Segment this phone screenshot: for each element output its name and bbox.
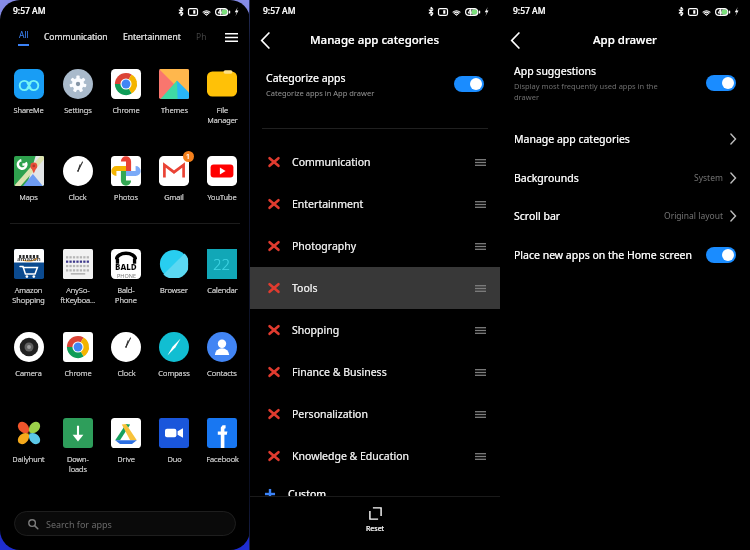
button[interactable]: Back (500, 25, 530, 55)
button[interactable]: Place new apps on the Home screen (514, 242, 736, 268)
staticText: Backgrounds (514, 171, 579, 185)
button[interactable]: Menu (220, 26, 242, 48)
staticText: Browser (160, 285, 188, 295)
staticText: 22 (213, 254, 231, 274)
button[interactable]: Browser (150, 249, 198, 295)
button[interactable]: Contacts (198, 332, 246, 378)
button[interactable]: Settings (53, 69, 102, 115)
staticText: Duo (167, 454, 182, 464)
staticText: Amazon Shopping (12, 285, 45, 305)
button[interactable]: Search for apps (14, 511, 236, 536)
staticText: Tools (292, 281, 318, 295)
staticText: Knowledge & Education (292, 449, 410, 463)
button[interactable]: BALD (102, 249, 150, 305)
button[interactable]: Personalization (268, 393, 486, 435)
button[interactable]: Categorize apps (266, 62, 484, 106)
staticText: PHONE (117, 272, 136, 279)
button[interactable]: All (18, 29, 29, 46)
staticText: Shopping (292, 323, 340, 337)
staticText: Drive (117, 454, 135, 464)
staticText: Chrome (64, 368, 92, 378)
staticText: Themes (161, 105, 188, 115)
staticText: Finance & Business (292, 365, 387, 379)
button[interactable]: Compass (150, 332, 198, 378)
staticText: Compass (158, 368, 190, 378)
button[interactable]: Entertainment (268, 183, 486, 225)
staticText: App suggestions (514, 64, 597, 78)
button[interactable]: Shopping (268, 309, 486, 351)
button[interactable]: Clock (53, 156, 102, 202)
staticText: Photography (292, 239, 357, 253)
button[interactable]: Reset (366, 507, 385, 534)
button[interactable]: Facebook (198, 418, 246, 464)
button[interactable]: Photos (102, 156, 150, 202)
staticText: Camera (15, 368, 42, 378)
staticText: Entertainment (292, 197, 364, 211)
button[interactable]: Finance & Business (268, 351, 486, 393)
button[interactable]: File Manager (198, 69, 246, 125)
staticText: Categorize apps in App drawer (266, 88, 375, 98)
button[interactable]: YouTube (198, 156, 246, 202)
button[interactable]: Toggle (706, 75, 736, 91)
button[interactable]: Communication (268, 141, 486, 183)
staticText: Calendar (207, 285, 238, 295)
button[interactable]: Backgrounds (514, 165, 736, 191)
button[interactable]: Custom (264, 473, 486, 515)
button[interactable]: Scroll bar (514, 203, 736, 229)
staticText: Down- loads (67, 454, 89, 474)
staticText: Gmail (164, 192, 184, 202)
button[interactable]: Toggle (454, 76, 484, 92)
button[interactable]: ShareMe (4, 69, 53, 115)
staticText: 1 (186, 152, 191, 162)
staticText: Photos (114, 192, 138, 202)
button[interactable]: Photography (268, 225, 486, 267)
staticText: YouTube (207, 192, 237, 202)
staticText: Maps (19, 192, 38, 202)
button[interactable]: AnySo- ftKeyboa... (53, 249, 102, 305)
staticText: Clock (68, 192, 87, 202)
staticText: ShareMe (13, 105, 44, 115)
staticText: Reset (366, 524, 385, 534)
staticText: Place new apps on the Home screen (514, 248, 693, 262)
staticText: Ph (196, 31, 207, 43)
staticText: All (19, 29, 29, 41)
staticText: Search for apps (46, 518, 112, 530)
staticText: 9:57 AM (263, 5, 296, 17)
staticText: BALD (115, 261, 137, 272)
button[interactable]: App suggestions (514, 64, 736, 102)
staticText: Clock (117, 368, 136, 378)
button[interactable]: amazon (4, 249, 53, 305)
staticText: System (694, 172, 723, 184)
button[interactable]: Entertainment (123, 31, 181, 43)
button[interactable]: Clock (102, 332, 150, 378)
staticText: AnySo- ftKeyboa... (60, 285, 96, 305)
button[interactable]: Manage app categories (514, 126, 736, 152)
staticText: Chrome (112, 105, 140, 115)
button[interactable]: Drive (102, 418, 150, 464)
staticText: App drawer (593, 32, 657, 48)
button[interactable]: 1 (150, 156, 198, 202)
button[interactable]: Chrome (102, 69, 150, 115)
staticText: Entertainment (123, 31, 181, 43)
staticText: Communication (292, 155, 371, 169)
button[interactable]: Tools (268, 267, 486, 309)
button[interactable]: Down- loads (53, 418, 102, 474)
button[interactable]: Camera (4, 332, 53, 378)
button[interactable]: Dailyhunt (4, 418, 53, 464)
button[interactable]: Duo (150, 418, 198, 464)
staticText: Settings (64, 105, 92, 115)
button[interactable]: Knowledge & Education (268, 435, 486, 477)
staticText: 9:57 AM (13, 5, 46, 17)
button[interactable]: Chrome (53, 332, 102, 378)
staticText: Facebook (206, 454, 239, 464)
button[interactable]: Themes (150, 69, 198, 115)
button[interactable]: 22 (198, 249, 246, 295)
button[interactable]: Communication (44, 31, 108, 43)
staticText: Communication (44, 31, 108, 43)
staticText: Manage app categories (514, 132, 630, 146)
button[interactable]: Maps (4, 156, 53, 202)
button[interactable]: Toggle (706, 247, 736, 263)
button[interactable]: Back (250, 25, 280, 55)
staticText: 9:57 AM (513, 5, 546, 17)
staticText: Categorize apps (266, 71, 346, 85)
